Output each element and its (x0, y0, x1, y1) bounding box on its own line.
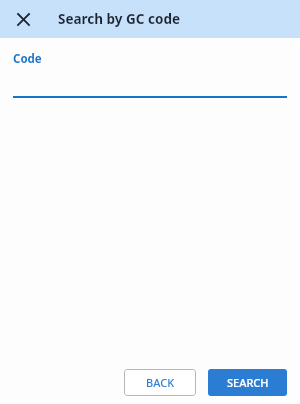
staticText: Search by GC code (58, 10, 181, 28)
button[interactable]: SEARCH (208, 369, 287, 396)
staticText: BACK (146, 375, 175, 390)
staticText: SEARCH (227, 375, 269, 390)
button[interactable]: BACK (124, 369, 196, 396)
staticText: Code (13, 51, 42, 67)
button[interactable]: Close (11, 7, 35, 31)
button[interactable] (13, 88, 287, 98)
